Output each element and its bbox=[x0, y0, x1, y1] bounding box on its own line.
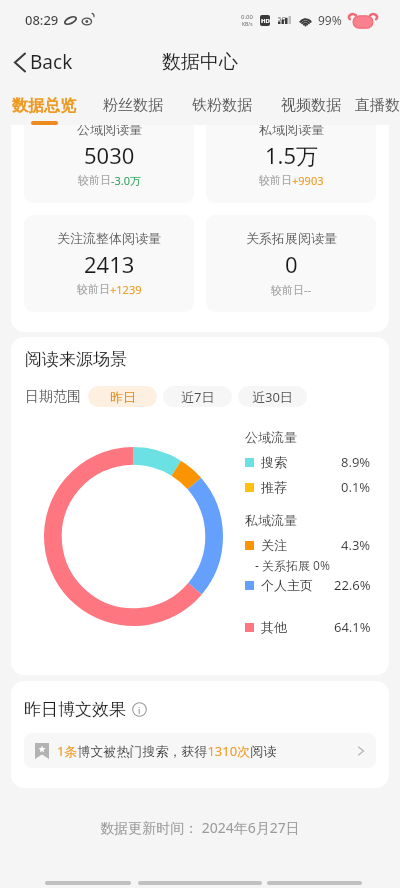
staticText: 08:29 bbox=[25, 11, 59, 29]
staticText: 0.00 bbox=[241, 13, 253, 21]
staticText: 数据总览 bbox=[12, 96, 76, 116]
staticText: 关注 bbox=[261, 537, 287, 553]
staticText: 2413 bbox=[84, 249, 135, 279]
staticText: 较前日 bbox=[78, 173, 111, 187]
button[interactable]: 关注流整体阅读量 bbox=[24, 215, 194, 312]
staticText: 较前日-- bbox=[271, 282, 312, 297]
button[interactable]: Info bbox=[132, 702, 147, 717]
staticText: 近30日 bbox=[252, 388, 293, 406]
button[interactable]: 昨日 bbox=[88, 386, 157, 407]
staticText: +9903 bbox=[292, 173, 324, 188]
button[interactable]: 铁粉数据 bbox=[177, 84, 266, 125]
staticText: 数据更新时间： 2024年6月27日 bbox=[0, 818, 400, 837]
staticText: 1条博文被热门搜索，获得1310次阅读 bbox=[57, 742, 277, 760]
staticText: 铁粉数据 bbox=[192, 96, 252, 115]
staticText: 粉丝数据 bbox=[103, 96, 163, 115]
staticText: Back bbox=[30, 49, 73, 75]
staticText: 8.9% bbox=[341, 453, 371, 471]
staticText: 私域阅读量 bbox=[259, 125, 324, 137]
staticText: 0.1% bbox=[341, 478, 371, 496]
button[interactable]: 近30日 bbox=[238, 386, 307, 407]
staticText: 视频数据 bbox=[281, 96, 341, 115]
button[interactable]: 视频数据 bbox=[266, 84, 355, 125]
staticText: 0 bbox=[285, 249, 298, 279]
button[interactable]: 公域阅读量 bbox=[24, 125, 194, 203]
staticText: 阅读来源场景 bbox=[25, 349, 127, 370]
staticText: 64.1% bbox=[334, 618, 371, 636]
staticText: 4.3% bbox=[341, 536, 371, 554]
staticText: 个人主页 bbox=[261, 577, 313, 593]
staticText: -3.0万 bbox=[111, 173, 142, 188]
staticText: 昨日博文效果 bbox=[24, 699, 126, 720]
button[interactable]: 数据总览 bbox=[0, 84, 88, 125]
staticText: 公域阅读量 bbox=[77, 125, 142, 137]
button[interactable]: Recents bbox=[267, 876, 362, 888]
staticText: 99% bbox=[318, 12, 342, 28]
staticText: 其他 bbox=[261, 619, 287, 635]
staticText: 数据中心 bbox=[162, 50, 238, 74]
staticText: 推荐 bbox=[261, 479, 287, 495]
button[interactable]: 直播数据 bbox=[355, 84, 399, 125]
staticText: 1.5万 bbox=[265, 140, 319, 170]
staticText: 搜索 bbox=[261, 454, 287, 470]
staticText: 关系拓展阅读量 bbox=[246, 230, 337, 246]
staticText: 直播数据 bbox=[355, 96, 399, 115]
staticText: 较前日 bbox=[77, 282, 110, 296]
staticText: KB/s bbox=[242, 21, 253, 28]
button[interactable]: Home bbox=[138, 876, 262, 888]
button[interactable]: 关系拓展阅读量 bbox=[206, 215, 376, 312]
staticText: 5G bbox=[278, 15, 286, 23]
staticText: i bbox=[138, 704, 141, 716]
staticText: 22.6% bbox=[334, 576, 371, 594]
button[interactable]: 近7日 bbox=[163, 386, 232, 407]
staticText: 5030 bbox=[84, 140, 135, 170]
staticText: 私域流量 bbox=[245, 512, 297, 528]
button[interactable]: Back bbox=[0, 43, 85, 81]
button[interactable]: 私域阅读量 bbox=[206, 125, 376, 203]
staticText: +1239 bbox=[110, 282, 142, 297]
button[interactable]: Back bbox=[45, 876, 131, 888]
staticText: 近7日 bbox=[181, 388, 215, 406]
staticText: 关注流整体阅读量 bbox=[57, 230, 161, 246]
staticText: 公域流量 bbox=[245, 429, 297, 445]
staticText: HD bbox=[261, 17, 270, 25]
staticText: 昨日 bbox=[110, 389, 136, 405]
staticText: 日期范围 bbox=[25, 388, 81, 406]
button[interactable]: 粉丝数据 bbox=[88, 84, 177, 125]
button[interactable]: 1条博文被热门搜索，获得1310次阅读 bbox=[24, 733, 376, 768]
staticText: 较前日 bbox=[259, 173, 292, 187]
staticText: - 关系拓展 0% bbox=[255, 557, 330, 573]
